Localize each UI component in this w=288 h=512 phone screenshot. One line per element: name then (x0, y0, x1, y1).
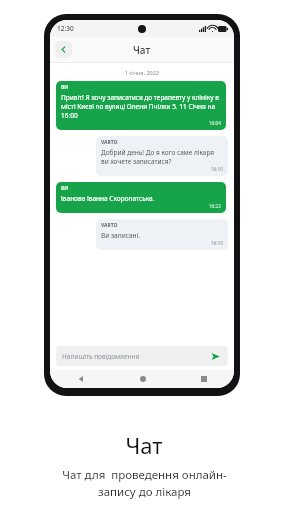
staticText: Добрий день! До я кого саме лікаря ви хо… (101, 148, 223, 166)
staticText: Привіт! Я хочу записатися до терапевту у… (61, 93, 221, 120)
button[interactable]: VARTO (96, 219, 228, 250)
button[interactable]: Напишіть повідомлення (56, 346, 228, 366)
staticText: Напишіть повідомлення (62, 352, 208, 361)
staticText: 1 січня, 2022 (50, 69, 234, 76)
staticText: ВИ (61, 185, 69, 192)
staticText: Чат (125, 430, 163, 460)
button[interactable]: ВИ (56, 182, 226, 213)
staticText: VARTO (101, 139, 118, 146)
staticText: 16:10 (101, 240, 223, 247)
staticText: ВИ (61, 84, 69, 91)
staticText: Ви записані. (101, 231, 140, 240)
button[interactable]: Back (50, 370, 112, 388)
staticText: Чат (133, 43, 151, 57)
staticText: Іванова Іванна Скоропатська. (61, 194, 155, 203)
staticText: VARTO (101, 222, 118, 229)
button[interactable]: Back (55, 41, 72, 58)
button[interactable]: Home (112, 370, 173, 388)
staticText: 16:04 (61, 120, 221, 127)
button[interactable]: Send (208, 349, 222, 363)
staticText: 16:10 (101, 166, 223, 173)
staticText: Чат для проведення онлайн- запису до лік… (62, 467, 227, 500)
staticText: 12:30 (57, 24, 74, 33)
staticText: 16:22 (61, 203, 221, 210)
button[interactable]: Recents (173, 370, 234, 388)
button[interactable]: ВИ (56, 81, 226, 130)
button[interactable]: VARTO (96, 136, 228, 176)
